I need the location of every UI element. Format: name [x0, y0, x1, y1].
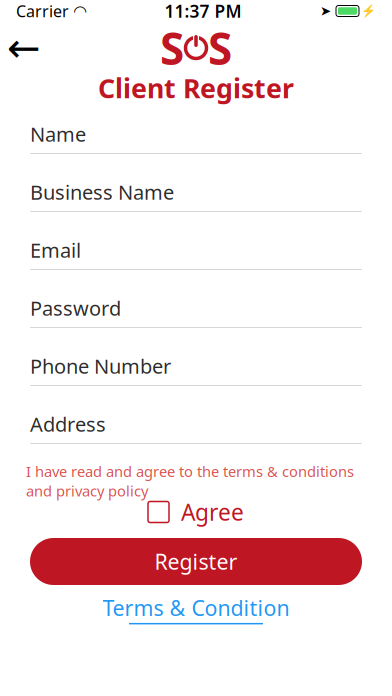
staticText: Terms & Condition	[102, 594, 289, 622]
staticText: ←	[7, 25, 41, 71]
staticText: S	[160, 19, 184, 77]
staticText: ◠	[74, 2, 86, 20]
staticText: Address	[30, 411, 106, 437]
staticText: Email	[30, 237, 81, 263]
button[interactable]: Register	[30, 538, 362, 585]
staticText: Agree	[181, 497, 244, 527]
staticText: Name	[30, 121, 86, 147]
staticText: I have read and agree to the terms & con…	[26, 461, 354, 500]
button[interactable]: Password	[30, 298, 362, 348]
button[interactable]: Agree	[148, 497, 244, 527]
button[interactable]: Back	[0, 28, 48, 68]
staticText: 11:37 PM	[164, 0, 241, 22]
button[interactable]: Address	[30, 414, 362, 464]
staticText: Phone Number	[30, 353, 171, 379]
staticText: S	[208, 19, 232, 77]
staticText: ⚡	[361, 4, 376, 18]
staticText: ➤	[320, 3, 331, 18]
button[interactable]: Name	[30, 124, 362, 174]
button[interactable]: Business Name	[30, 182, 362, 232]
staticText: Carrier	[16, 0, 69, 22]
button[interactable]: Phone Number	[30, 356, 362, 406]
button[interactable]: Terms & Condition	[102, 597, 289, 621]
staticText: Password	[30, 295, 121, 321]
staticText: Register	[154, 547, 237, 576]
staticText: Client Register	[98, 70, 294, 106]
button[interactable]: Email	[30, 240, 362, 290]
staticText: Business Name	[30, 179, 174, 205]
